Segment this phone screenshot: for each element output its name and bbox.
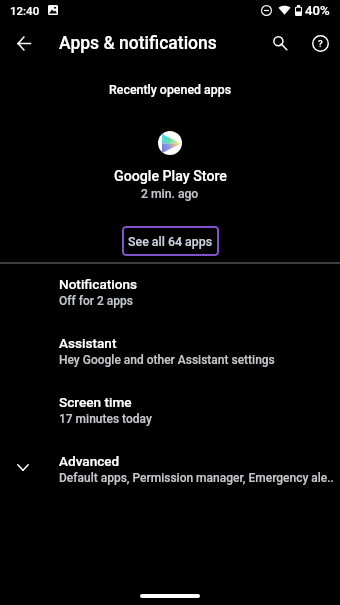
button[interactable]: See all 64 apps [122,226,219,256]
button[interactable]: Advanced [0,447,340,506]
staticText: Assistant [59,335,117,351]
staticText: Apps & notifications [59,33,217,54]
button[interactable]: Back [9,29,38,58]
button[interactable]: Assistant [0,329,340,388]
staticText: 40% [305,3,330,18]
staticText: Advanced [59,453,120,469]
button[interactable]: Screen time [0,388,340,447]
staticText: Recently opened apps [109,82,232,97]
staticText: Notifications [59,276,137,292]
button[interactable]: Notifications [0,270,340,329]
staticText: Google Play Store [114,168,227,185]
staticText: See all 64 apps [128,234,213,249]
staticText: Hey Google and other Assistant settings [59,353,275,367]
staticText: Default apps, Permission manager, Emerge… [59,471,334,485]
staticText: ? [318,38,323,49]
staticText: 17 minutes today [59,412,152,426]
staticText: Off for 2 apps [59,294,133,308]
staticText: 2 min. ago [141,187,199,201]
button[interactable]: Search [265,28,294,57]
staticText: 12:40 [10,4,40,17]
staticText: Screen time [59,394,132,410]
button[interactable]: Help [306,29,335,58]
